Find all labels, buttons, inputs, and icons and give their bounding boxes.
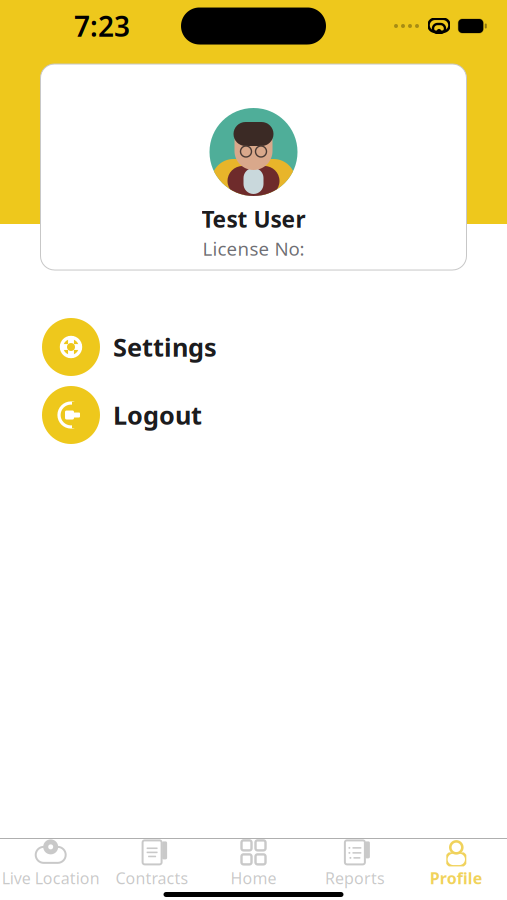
button[interactable]: Reports	[304, 833, 406, 895]
button[interactable]: Settings	[0, 318, 507, 376]
button[interactable]: Home	[203, 833, 304, 895]
button[interactable]: Live Location	[0, 833, 101, 895]
staticText: License No:	[202, 236, 304, 261]
staticText: Contracts	[116, 867, 189, 889]
staticText: Settings	[113, 330, 217, 364]
button[interactable]: Contracts	[101, 833, 203, 895]
staticText: 7:23	[74, 7, 130, 45]
staticText: Reports	[325, 867, 385, 889]
staticText: Test User	[201, 204, 305, 234]
staticText: Home	[230, 867, 276, 889]
staticText: Profile	[430, 867, 483, 889]
staticText: Live Location	[2, 867, 100, 889]
staticText: Logout	[113, 398, 202, 432]
button[interactable]: Logout	[0, 386, 507, 444]
button[interactable]: Profile	[406, 833, 507, 895]
